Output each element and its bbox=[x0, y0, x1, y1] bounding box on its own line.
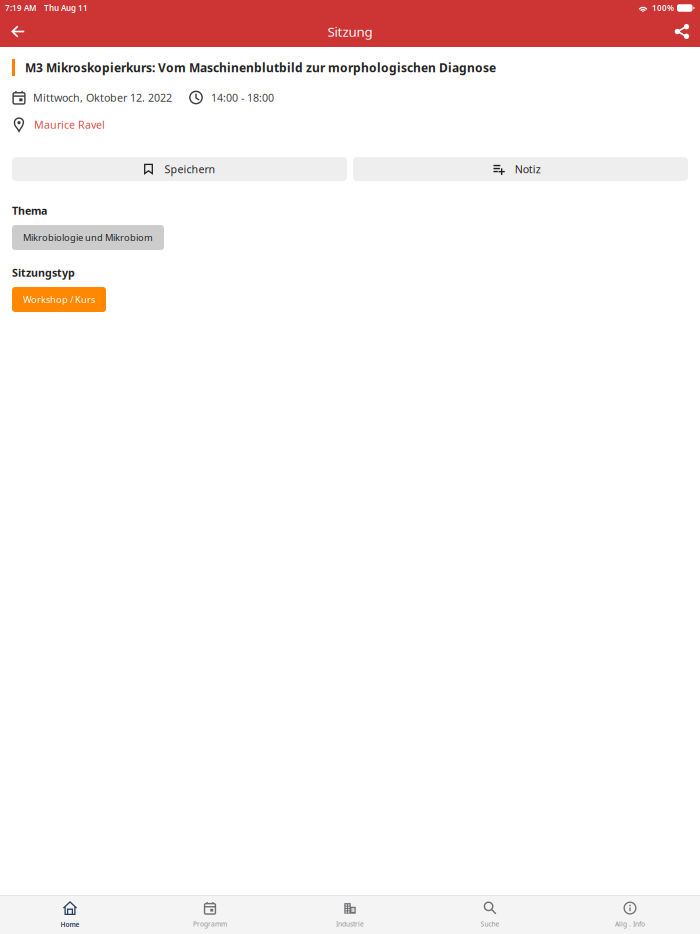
staticText: Sitzung bbox=[327, 23, 372, 40]
staticText: Programm bbox=[193, 920, 227, 928]
staticText: Industrie bbox=[336, 920, 364, 928]
staticText: Allg . Info bbox=[615, 920, 645, 928]
staticText: Suche bbox=[480, 920, 499, 928]
button[interactable]: Industrie bbox=[280, 895, 420, 934]
button[interactable]: Mikrobiologie und Mikrobiom bbox=[12, 225, 164, 250]
staticText: Notiz bbox=[515, 162, 541, 176]
button[interactable]: Suche bbox=[420, 895, 560, 934]
staticText: Mikrobiologie und Mikrobiom bbox=[23, 231, 153, 244]
staticText: Workshop / Kurs bbox=[23, 293, 95, 306]
button[interactable]: Share bbox=[666, 16, 698, 47]
staticText: Thu Aug 11 bbox=[44, 3, 88, 13]
staticText: 7:19 AM bbox=[5, 3, 36, 13]
staticText: Sitzungstyp bbox=[12, 265, 75, 280]
staticText: Mittwoch, Oktober 12. 2022 bbox=[33, 90, 172, 105]
staticText: Maurice Ravel bbox=[34, 117, 105, 132]
staticText: Speichern bbox=[164, 162, 215, 176]
button[interactable]: Speichern bbox=[12, 157, 347, 181]
button[interactable]: Maurice Ravel bbox=[34, 117, 105, 132]
button[interactable]: Notiz bbox=[353, 157, 688, 181]
button[interactable]: Allg . Info bbox=[560, 895, 700, 934]
staticText: 14:00 - 18:00 bbox=[211, 90, 274, 105]
staticText: 100% bbox=[652, 3, 674, 13]
staticText: M3 Mikroskopierkurs: Vom Maschinenblutbi… bbox=[25, 59, 496, 75]
button[interactable]: Programm bbox=[140, 895, 280, 934]
button[interactable]: Workshop / Kurs bbox=[12, 287, 106, 312]
button[interactable]: Back bbox=[2, 16, 34, 47]
staticText: Home bbox=[60, 920, 79, 929]
staticText: Thema bbox=[12, 203, 47, 218]
button[interactable]: Home bbox=[0, 895, 140, 934]
